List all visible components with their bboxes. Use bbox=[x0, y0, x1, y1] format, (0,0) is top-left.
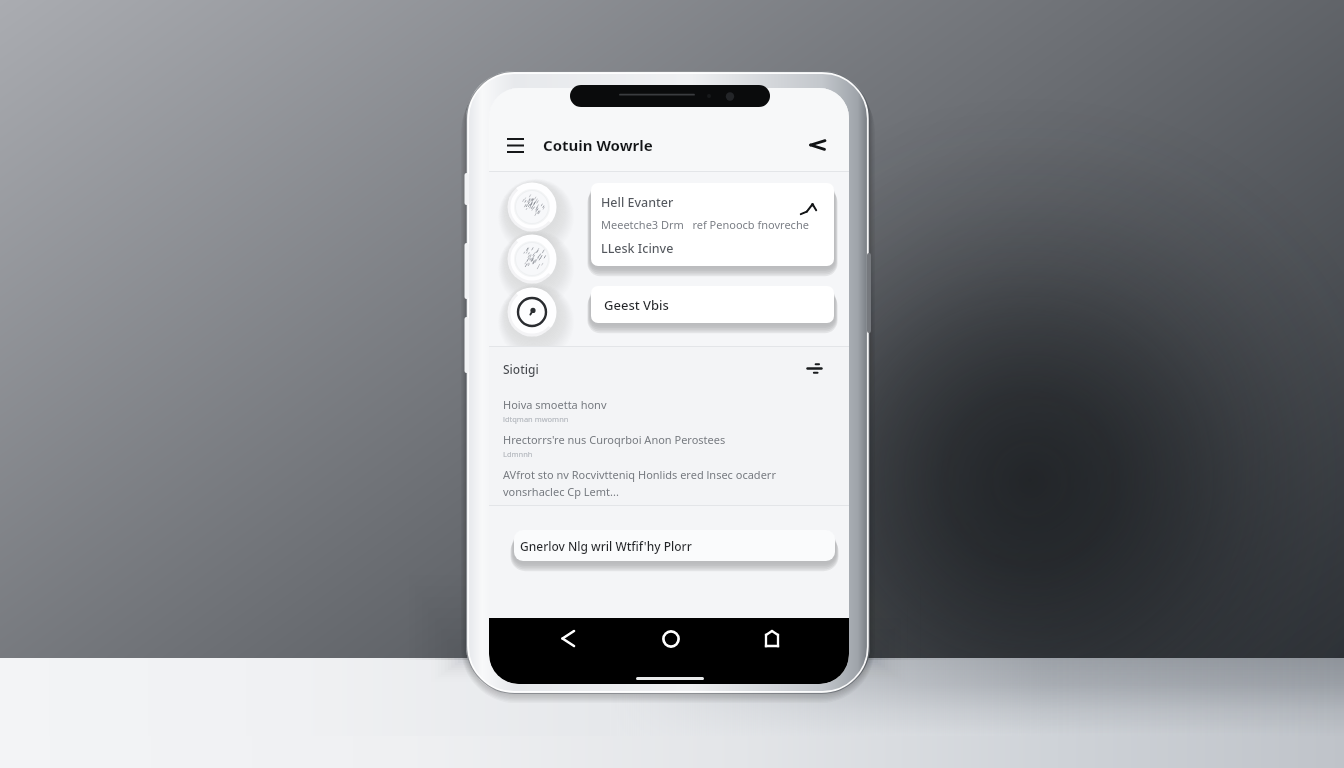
staticText: Siotigi bbox=[503, 361, 539, 377]
staticText: Hrectorrs're nus Curoqrboi Anon Perostee… bbox=[503, 432, 726, 447]
button[interactable]: Open details bbox=[797, 198, 819, 220]
button[interactable]: Back bbox=[804, 132, 830, 158]
button[interactable]: Recents bbox=[755, 620, 791, 656]
staticText: vonsrhaclec Cp Lemt... bbox=[503, 484, 619, 499]
button[interactable]: Contact one bbox=[506, 179, 562, 235]
staticText: Ldmnnh bbox=[503, 449, 533, 459]
staticText: Meeetche3 Drm ref Penoocb fnovreche bbox=[601, 217, 809, 232]
button[interactable]: Recent timer bbox=[506, 284, 562, 340]
button[interactable]: Hell Evanter bbox=[591, 183, 834, 266]
button[interactable]: Filter bbox=[803, 357, 825, 379]
staticText: AVfrot sto nv Rocvivtteniq Honlids ered … bbox=[503, 467, 776, 482]
button[interactable]: Back bbox=[552, 620, 588, 656]
staticText: Gnerlov Nlg wril Wtfif'hy Plorr bbox=[520, 538, 692, 554]
button[interactable]: Geest Vbis bbox=[591, 286, 834, 323]
staticText: ldtqman mwomnn bbox=[503, 414, 569, 424]
button[interactable]: Home bbox=[653, 621, 689, 657]
staticText: Geest Vbis bbox=[604, 296, 669, 314]
button[interactable]: Contact two bbox=[506, 231, 562, 287]
staticText: LLesk Icinve bbox=[601, 240, 674, 257]
staticText: Hoiva smoetta honv bbox=[503, 397, 607, 412]
staticText: Hell Evanter bbox=[601, 194, 674, 211]
button[interactable]: Gnerlov Nlg wril Wtfif'hy Plorr bbox=[514, 530, 835, 561]
button[interactable]: Menu bbox=[499, 129, 531, 161]
staticText: Cotuin Wowrle bbox=[543, 135, 653, 155]
